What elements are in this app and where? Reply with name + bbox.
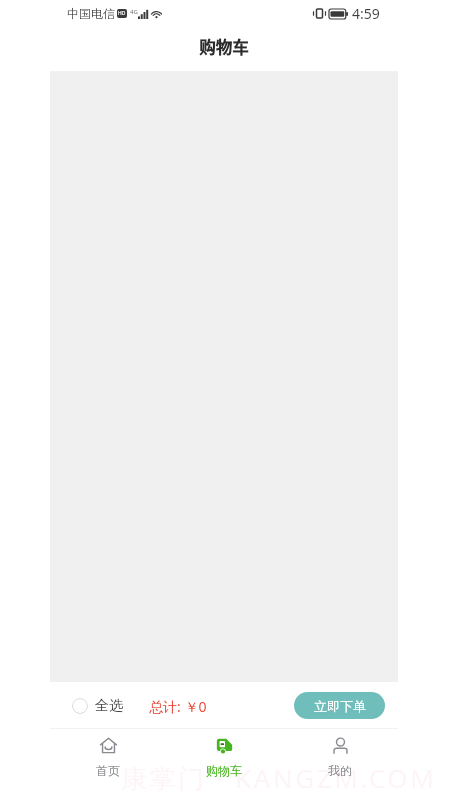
button[interactable]: 首页	[50, 729, 166, 800]
staticText: 4G	[130, 8, 138, 16]
staticText: 康掌门 · KANGZM.COM	[121, 760, 437, 796]
staticText: HD	[118, 10, 126, 17]
staticText: 4:59	[352, 4, 380, 23]
staticText: 首页	[96, 763, 120, 778]
staticText: 购物车	[199, 35, 249, 59]
staticText: 购物车	[206, 763, 242, 778]
button[interactable]: 全选	[72, 696, 123, 714]
button[interactable]: 我的	[282, 729, 398, 800]
staticText: 立即下单	[314, 698, 366, 714]
button[interactable]: 立即下单	[294, 692, 385, 719]
button[interactable]: 购物车	[166, 729, 282, 800]
staticText: 中国电信	[67, 6, 115, 21]
staticText: 我的	[328, 763, 352, 778]
staticText: 总计: ￥0	[149, 697, 207, 716]
staticText: 全选	[95, 697, 123, 715]
